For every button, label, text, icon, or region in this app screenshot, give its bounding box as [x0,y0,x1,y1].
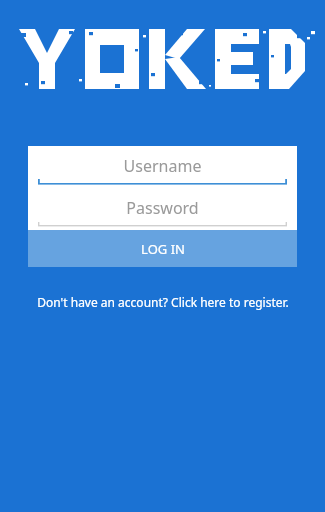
staticText: Password [28,197,297,219]
button[interactable]: LOG IN [28,230,297,267]
other: YOKED logo [19,29,306,89]
staticText: LOG IN [141,240,185,258]
staticText: Don't have an account? Click here to reg… [37,294,289,310]
staticText: Username [28,155,297,177]
button[interactable]: Don't have an account? Click here to reg… [0,292,325,312]
button[interactable]: Password [28,188,297,230]
button[interactable]: Username [28,146,297,188]
